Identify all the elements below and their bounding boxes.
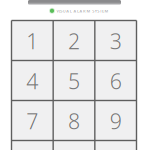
button[interactable]: 3	[95, 21, 136, 60]
button[interactable]: 9	[95, 101, 136, 140]
staticText: 2	[68, 27, 80, 55]
staticText: 8	[68, 107, 80, 135]
staticText: 5	[68, 67, 80, 95]
staticText: 4	[26, 67, 38, 95]
button[interactable]: 1	[12, 21, 53, 60]
button[interactable]: 8	[54, 101, 94, 140]
button[interactable]: 4	[12, 61, 53, 100]
staticText: 7	[26, 107, 38, 135]
staticText: 6	[110, 67, 122, 95]
staticText: 1	[26, 27, 38, 55]
button[interactable]: 5	[54, 61, 94, 100]
button[interactable]: 2	[54, 21, 94, 60]
button[interactable]: 7	[12, 101, 53, 140]
staticText: 3	[110, 27, 122, 55]
button[interactable]: 6	[95, 61, 136, 100]
staticText: VISUAL ALARM SYSTEM	[56, 8, 108, 14]
staticText: 9	[110, 107, 122, 135]
